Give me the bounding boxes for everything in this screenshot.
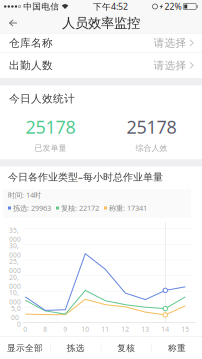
staticText: 仓库名称 bbox=[9, 36, 53, 50]
button[interactable]: 出勤人数 bbox=[0, 53, 202, 78]
staticText: 人员效率监控 bbox=[62, 15, 140, 31]
staticText: 请选择 bbox=[153, 59, 186, 72]
staticText: 25178 bbox=[25, 114, 75, 139]
staticText: 20,000 bbox=[9, 272, 21, 291]
staticText: 复核: 22172 bbox=[61, 203, 99, 213]
staticText: 下午4:52 bbox=[93, 1, 128, 12]
staticText: 22% bbox=[164, 1, 181, 12]
staticText: 11 bbox=[101, 324, 109, 334]
staticText: 时间: 14时 bbox=[8, 190, 41, 200]
button[interactable]: 拣选 bbox=[51, 337, 101, 359]
button[interactable]: 显示全部 bbox=[0, 337, 50, 359]
button[interactable]: 称重 bbox=[152, 337, 202, 359]
button[interactable]: 复核 bbox=[101, 337, 151, 359]
button[interactable]: 仓库名称 bbox=[0, 33, 202, 53]
staticText: 10 bbox=[81, 324, 89, 334]
staticText: 25178 bbox=[126, 114, 176, 139]
staticText: 25,000 bbox=[9, 257, 21, 275]
staticText: 13 bbox=[141, 324, 149, 334]
staticText: 复核 bbox=[117, 342, 135, 353]
staticText: 请选择 bbox=[153, 36, 186, 50]
staticText: 14 bbox=[161, 324, 169, 334]
staticText: 5,000 bbox=[11, 304, 21, 322]
staticText: 10,000 bbox=[9, 288, 21, 306]
staticText: 称重 bbox=[168, 342, 186, 353]
staticText: 9 bbox=[63, 324, 67, 334]
staticText: 中国电信 bbox=[23, 1, 59, 12]
staticText: 出勤人数 bbox=[9, 59, 53, 72]
staticText: 12 bbox=[121, 324, 129, 334]
staticText: 已发单量 bbox=[34, 143, 66, 153]
staticText: 0 bbox=[17, 319, 21, 329]
staticText: 综合人效 bbox=[135, 143, 167, 153]
staticText: 30,000 bbox=[9, 241, 21, 259]
staticText: 今日人效统计 bbox=[9, 92, 75, 105]
button[interactable]: Back bbox=[0, 15, 23, 30]
staticText: 拣选: 29963 bbox=[13, 203, 51, 213]
staticText: 0 bbox=[23, 324, 27, 334]
staticText: 8 bbox=[43, 324, 47, 334]
staticText: 拣选 bbox=[67, 342, 85, 353]
staticText: 15 bbox=[181, 324, 189, 334]
staticText: 显示全部 bbox=[7, 342, 43, 353]
staticText: 称重: 17341 bbox=[109, 203, 147, 213]
staticText: 35,000 bbox=[9, 225, 21, 244]
staticText: 今日各作业类型–每小时总作业单量 bbox=[8, 170, 163, 184]
